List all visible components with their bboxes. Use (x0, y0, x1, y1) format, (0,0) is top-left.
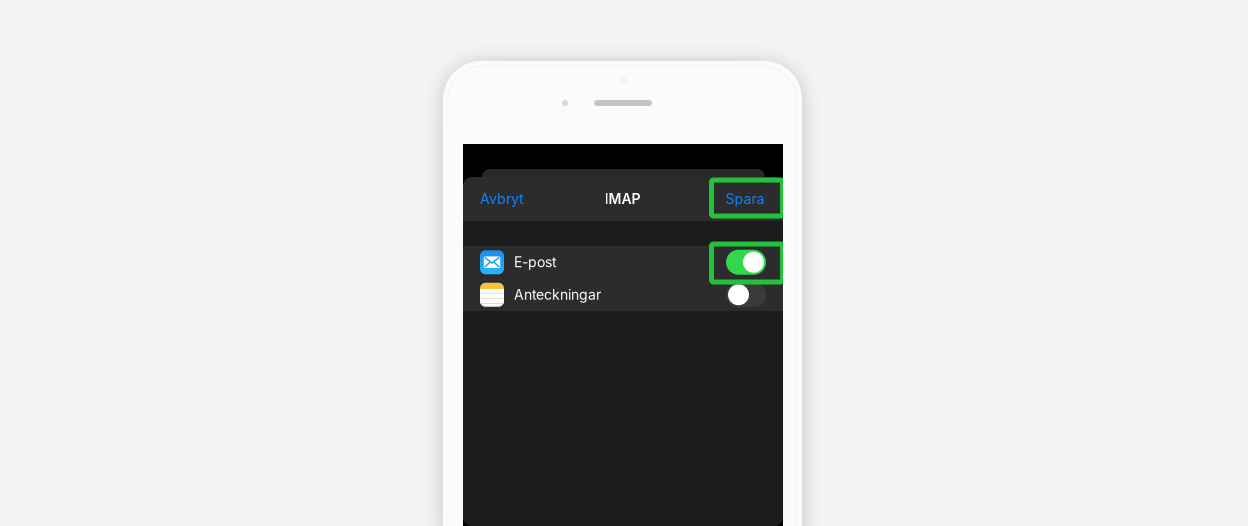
button[interactable]: Spara (707, 177, 783, 221)
staticText: E-post (514, 254, 557, 271)
staticText: Avbryt (480, 190, 524, 207)
staticText: Anteckningar (514, 286, 601, 303)
button[interactable]: E-post (463, 246, 783, 278)
button[interactable]: Anteckningar (463, 278, 783, 311)
staticText: IMAP (604, 190, 640, 207)
button[interactable]: Avbryt (463, 177, 538, 221)
staticText: Spara (725, 190, 764, 207)
